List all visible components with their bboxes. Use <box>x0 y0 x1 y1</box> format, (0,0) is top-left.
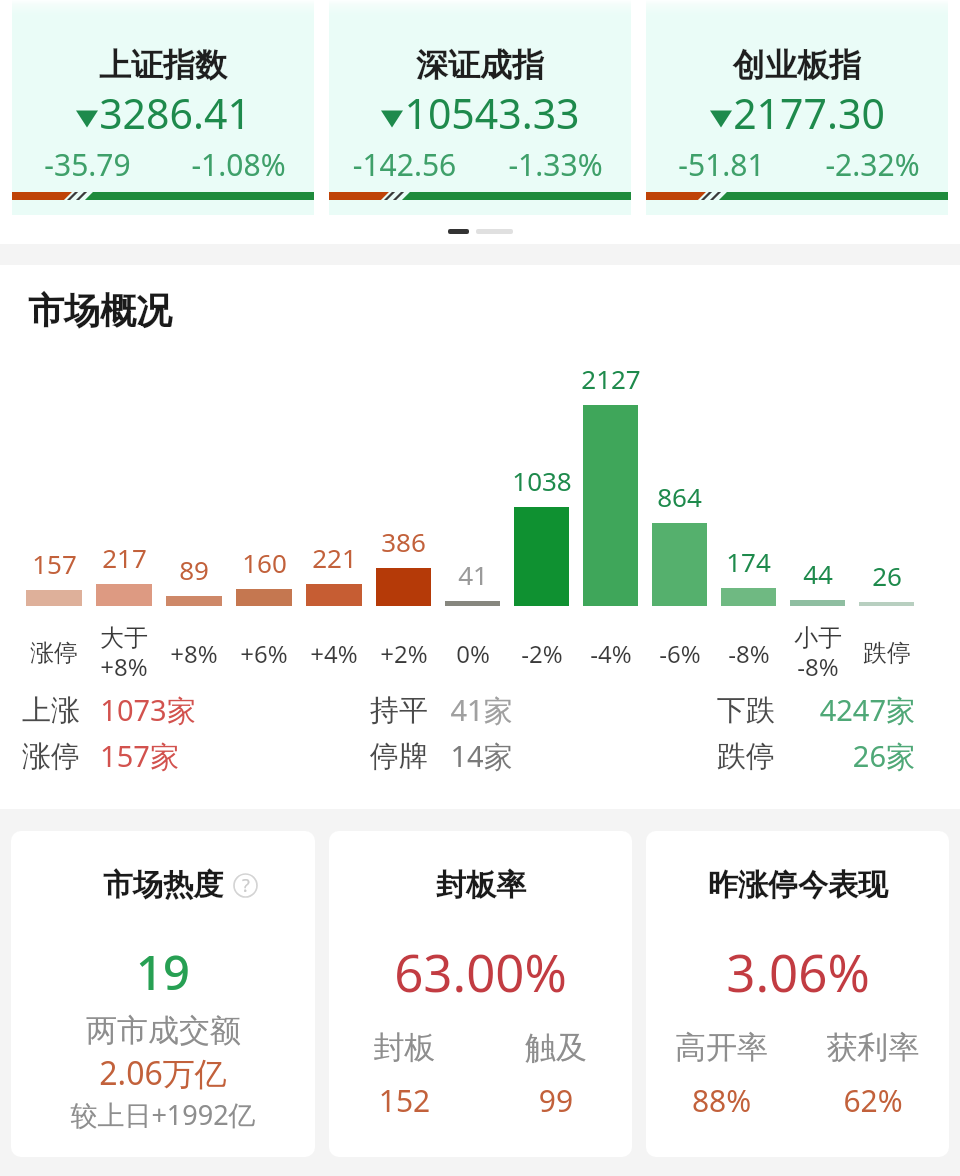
staticText: 62% <box>797 1080 949 1121</box>
button[interactable]: 封板率 <box>329 831 632 1157</box>
staticText: 14家 <box>450 736 513 776</box>
button[interactable] <box>448 229 469 234</box>
staticText: 88% <box>646 1080 797 1121</box>
staticText: 221 <box>312 540 357 575</box>
staticText: -2.32% <box>797 144 948 185</box>
staticText: -35.79 <box>12 144 163 185</box>
staticText: -2% <box>521 637 563 670</box>
staticText: 创业板指 <box>733 45 861 85</box>
staticText: 大于 +8% <box>100 623 148 683</box>
staticText: 2.06万亿 <box>99 1051 227 1095</box>
staticText: 获利率 <box>797 1028 949 1067</box>
staticText: 26 <box>872 558 902 593</box>
staticText: 4247家 <box>815 690 915 730</box>
staticText: 157 <box>32 546 77 581</box>
staticText: 上涨 <box>22 692 80 729</box>
staticText: -142.56 <box>329 144 480 185</box>
staticText: 两市成交额 <box>86 1011 241 1050</box>
staticText: 下跌 <box>717 692 775 729</box>
staticText: 上证指数 <box>99 45 227 85</box>
staticText: 持平 <box>370 692 428 729</box>
staticText: 1038 <box>512 463 572 498</box>
staticText: +8% <box>170 637 218 670</box>
staticText: 63.00% <box>394 937 567 1006</box>
staticText: 涨停 <box>22 738 80 775</box>
staticText: 10543.33 <box>404 85 580 141</box>
staticText: 封板 <box>329 1028 480 1067</box>
staticText: +4% <box>310 637 358 670</box>
staticText: -8% <box>728 637 770 670</box>
staticText: 市场热度 <box>103 866 223 904</box>
button[interactable]: 创业板指 <box>646 0 948 215</box>
staticText: -1.08% <box>163 144 314 185</box>
staticText: -1.33% <box>480 144 631 185</box>
staticText: 26家 <box>815 736 915 776</box>
staticText: 157家 <box>100 736 179 776</box>
staticText: 99 <box>480 1080 632 1121</box>
staticText: 2177.30 <box>733 85 885 141</box>
staticText: 44 <box>803 556 833 591</box>
staticText: -51.81 <box>646 144 797 185</box>
staticText: 触及 <box>480 1028 632 1067</box>
button[interactable] <box>476 229 513 234</box>
staticText: -4% <box>590 637 632 670</box>
staticText: 19 <box>136 940 190 1004</box>
staticText: 89 <box>179 552 209 587</box>
staticText: 864 <box>657 479 702 514</box>
button[interactable]: 深证成指 <box>329 0 631 215</box>
staticText: 160 <box>242 545 287 580</box>
button[interactable]: 上证指数 <box>12 0 314 215</box>
staticText: 停牌 <box>370 738 428 775</box>
staticText: 1073家 <box>100 690 196 730</box>
staticText: 跌停 <box>717 738 775 775</box>
button[interactable]: 昨涨停今表现 <box>646 831 949 1157</box>
staticText: +6% <box>240 637 288 670</box>
staticText: 174 <box>726 544 771 579</box>
staticText: -6% <box>659 637 701 670</box>
staticText: 3.06% <box>726 937 870 1006</box>
staticText: ? <box>242 873 250 898</box>
staticText: 386 <box>381 524 426 559</box>
staticText: 2127 <box>581 361 641 396</box>
staticText: 3286.41 <box>99 85 251 141</box>
staticText: 市场概况 <box>28 288 172 333</box>
staticText: 152 <box>329 1080 480 1121</box>
staticText: 41家 <box>450 690 513 730</box>
staticText: 较上日+1992亿 <box>70 1096 256 1133</box>
button[interactable]: 市场热度说明 <box>233 873 258 898</box>
staticText: 0% <box>456 637 490 670</box>
staticText: 217 <box>102 540 147 575</box>
staticText: 封板率 <box>436 866 526 904</box>
button[interactable]: 市场热度 <box>11 831 315 1157</box>
staticText: 跌停 <box>863 638 911 668</box>
staticText: 高开率 <box>646 1028 797 1067</box>
staticText: 涨停 <box>30 638 78 668</box>
staticText: 深证成指 <box>416 45 544 85</box>
staticText: 昨涨停今表现 <box>708 866 888 904</box>
staticText: 小于 -8% <box>794 623 842 683</box>
staticText: +2% <box>380 637 428 670</box>
staticText: 41 <box>458 557 488 592</box>
